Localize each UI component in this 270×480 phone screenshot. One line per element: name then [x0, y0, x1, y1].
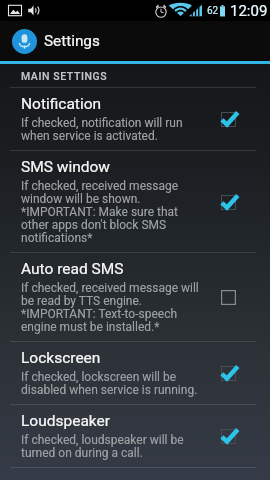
staticText: If checked, loudspeaker will be turned o…: [21, 433, 184, 460]
staticText: If checked, received message window will…: [21, 179, 179, 245]
button[interactable]: Disabled: [214, 283, 242, 311]
staticText: Settings: [44, 32, 100, 50]
staticText: 12:09: [230, 2, 268, 20]
button[interactable]: Settings: [0, 21, 270, 61]
button[interactable]: Enabled: [214, 359, 242, 387]
staticText: 62: [207, 5, 219, 17]
button[interactable]: Enabled: [214, 188, 242, 216]
button[interactable]: Lockscreen: [0, 342, 270, 404]
button[interactable]: Enabled: [214, 422, 242, 450]
button[interactable]: Loudspeaker: [0, 405, 270, 467]
staticText: Auto read SMS: [21, 260, 124, 278]
staticText: MAIN SETTINGS: [21, 70, 108, 82]
button[interactable]: Enabled: [214, 105, 242, 133]
staticText: SMS window: [21, 158, 110, 176]
button[interactable]: Auto read SMS: [0, 253, 270, 341]
button[interactable]: Notification: [0, 88, 270, 150]
staticText: Notification: [21, 95, 102, 113]
staticText: Loudspeaker: [21, 412, 111, 430]
staticText: If checked, lockscreen will be disabled …: [21, 370, 198, 397]
button[interactable]: SMS window: [0, 151, 270, 252]
staticText: Lockscreen: [21, 349, 101, 367]
staticText: If checked, notification will run when s…: [21, 116, 183, 143]
staticText: If checked, received message will be rea…: [21, 281, 199, 334]
